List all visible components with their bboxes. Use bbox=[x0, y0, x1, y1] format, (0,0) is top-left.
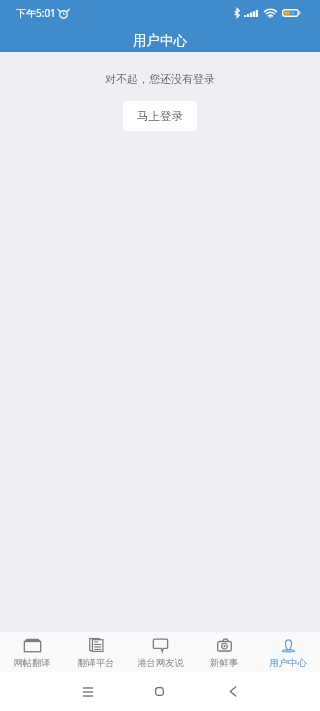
button[interactable]: Back bbox=[210, 672, 255, 711]
staticText: 翻译平台 bbox=[77, 657, 115, 669]
staticText: 网帖翻译 bbox=[13, 657, 51, 669]
staticText: 下午5:01 bbox=[16, 6, 56, 20]
button[interactable]: 翻译平台 bbox=[64, 632, 128, 672]
button[interactable]: Home bbox=[137, 672, 182, 711]
staticText: 新鲜事 bbox=[210, 657, 238, 669]
button[interactable]: Recents bbox=[65, 672, 110, 711]
button[interactable]: 港台网友说 bbox=[128, 632, 192, 672]
staticText: 用户中心 bbox=[269, 657, 307, 669]
staticText: 对不起，您还没有登录 bbox=[105, 72, 215, 86]
staticText: 港台网友说 bbox=[137, 657, 184, 669]
button[interactable]: 用户中心 bbox=[256, 632, 320, 672]
button[interactable]: 马上登录 bbox=[123, 101, 197, 131]
button[interactable]: 新鲜事 bbox=[192, 632, 256, 672]
button[interactable]: 网帖翻译 bbox=[0, 632, 64, 672]
staticText: 用户中心 bbox=[133, 32, 187, 49]
staticText: 马上登录 bbox=[137, 109, 183, 123]
